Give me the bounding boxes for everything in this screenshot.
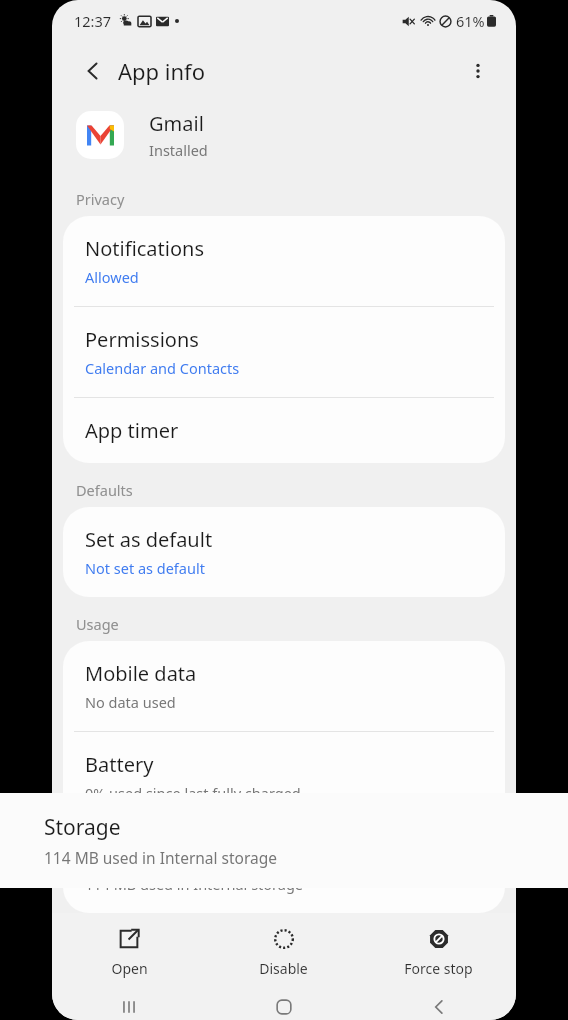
button[interactable]: Notifications (63, 216, 505, 306)
button[interactable]: Gmail (52, 100, 516, 170)
button[interactable]: Back (72, 50, 114, 92)
button[interactable]: Home (206, 993, 361, 1020)
staticText: 114 MB used in Internal storage (85, 874, 304, 894)
staticText: Gmail (149, 110, 204, 137)
button[interactable]: Storage (0, 793, 568, 888)
button[interactable]: Back (361, 993, 516, 1020)
staticText: Permissions (85, 326, 199, 353)
staticText: Defaults (76, 480, 133, 500)
staticText: App timer (85, 417, 179, 444)
staticText: Not set as default (85, 558, 205, 578)
button[interactable]: Storage (63, 823, 505, 913)
button[interactable]: Mobile data (63, 641, 505, 731)
staticText: Calendar and Contacts (85, 358, 240, 378)
staticText: Installed (149, 140, 208, 160)
staticText: Allowed (85, 267, 139, 287)
staticText: Disable (259, 959, 308, 978)
button[interactable]: Set as default (63, 507, 505, 597)
staticText: Privacy (76, 189, 125, 209)
button[interactable]: App timer (63, 398, 505, 463)
staticText: Storage (85, 842, 158, 869)
button[interactable]: More options (458, 51, 498, 91)
button[interactable]: Battery (63, 732, 505, 822)
staticText: 12:37 (74, 11, 112, 31)
button[interactable]: Open (52, 913, 206, 993)
staticText: Battery (85, 751, 154, 778)
staticText: 0% used since last fully charged (85, 783, 301, 803)
staticText: Storage (44, 813, 121, 842)
button[interactable]: Force stop (361, 913, 516, 993)
staticText: Force stop (404, 959, 473, 978)
staticText: Set as default (85, 526, 213, 553)
staticText: Open (111, 959, 148, 978)
staticText: Mobile data (85, 660, 197, 687)
button[interactable]: Recent apps (52, 993, 206, 1020)
button[interactable]: Permissions (63, 307, 505, 397)
staticText: 61% (456, 11, 485, 31)
staticText: No data used (85, 692, 176, 712)
staticText: App info (118, 56, 205, 86)
staticText: 114 MB used in Internal storage (44, 847, 278, 868)
staticText: Usage (76, 614, 119, 634)
button[interactable]: Disable (206, 913, 361, 993)
staticText: Notifications (85, 235, 204, 262)
